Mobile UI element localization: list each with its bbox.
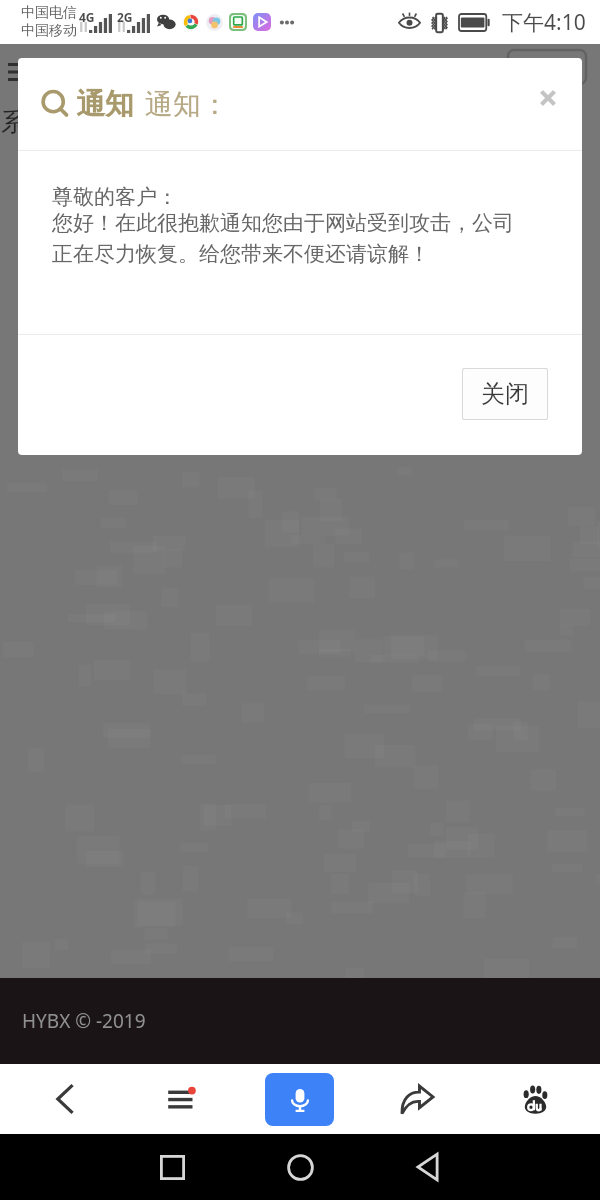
button[interactable]: 关闭 xyxy=(463,369,547,419)
button[interactable]: Back xyxy=(364,1134,492,1200)
staticText: 中国移动 xyxy=(21,22,77,40)
staticText: 关闭 xyxy=(481,379,529,409)
staticText: 2G xyxy=(117,9,133,25)
staticText: HYBX © -2019 xyxy=(22,1008,146,1034)
button[interactable]: Baidu xyxy=(476,1064,594,1134)
staticText: 4G xyxy=(79,9,95,25)
staticText: 通知： xyxy=(145,87,229,122)
button[interactable]: Close xyxy=(534,84,562,112)
staticText: 通知 xyxy=(76,86,134,123)
staticText: 您好！在此很抱歉通知您由于网站受到攻击，公司正在尽力恢复。给您带来不便还请谅解！ xyxy=(52,210,532,267)
staticText: 尊敬的客户： xyxy=(52,184,178,210)
button[interactable]: Share xyxy=(358,1064,476,1134)
staticText: 系 xyxy=(1,106,27,139)
button[interactable]: Home xyxy=(236,1134,364,1200)
staticText: 下午4:10 xyxy=(502,8,586,37)
button[interactable]: Recent apps xyxy=(108,1134,236,1200)
staticText: 中国电信 xyxy=(21,4,77,22)
button[interactable]: Voice search xyxy=(265,1073,334,1126)
button[interactable]: Menu xyxy=(123,1064,240,1134)
button[interactable]: Back xyxy=(6,1064,123,1134)
